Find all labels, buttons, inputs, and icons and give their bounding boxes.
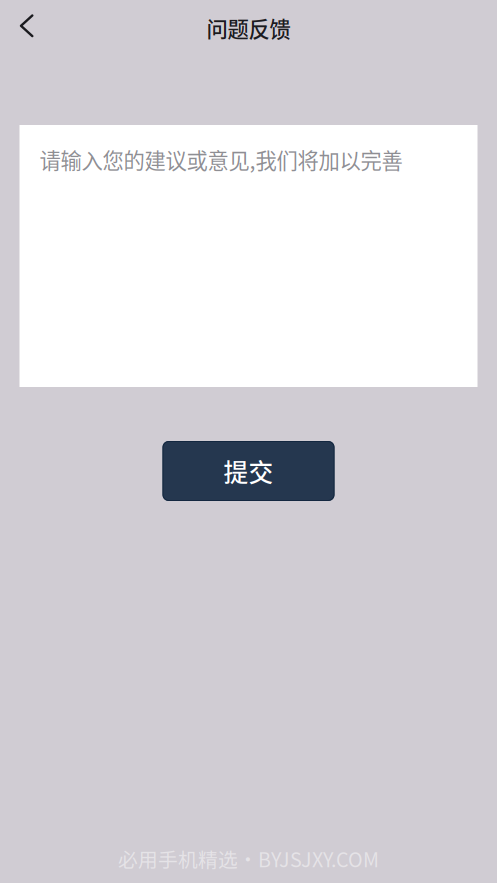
button[interactable]: 请输入您的建议或意见,我们将加以完善 bbox=[19, 125, 477, 387]
button[interactable]: 提交 bbox=[162, 441, 334, 501]
staticText: 提交 bbox=[223, 453, 273, 489]
staticText: 必用手机精选·BYJSJXY.COM bbox=[118, 844, 379, 873]
button[interactable]: 返回 bbox=[0, 0, 47, 52]
staticText: 请输入您的建议或意见,我们将加以完善 bbox=[39, 144, 402, 175]
staticText: 问题反馈 bbox=[206, 13, 290, 43]
